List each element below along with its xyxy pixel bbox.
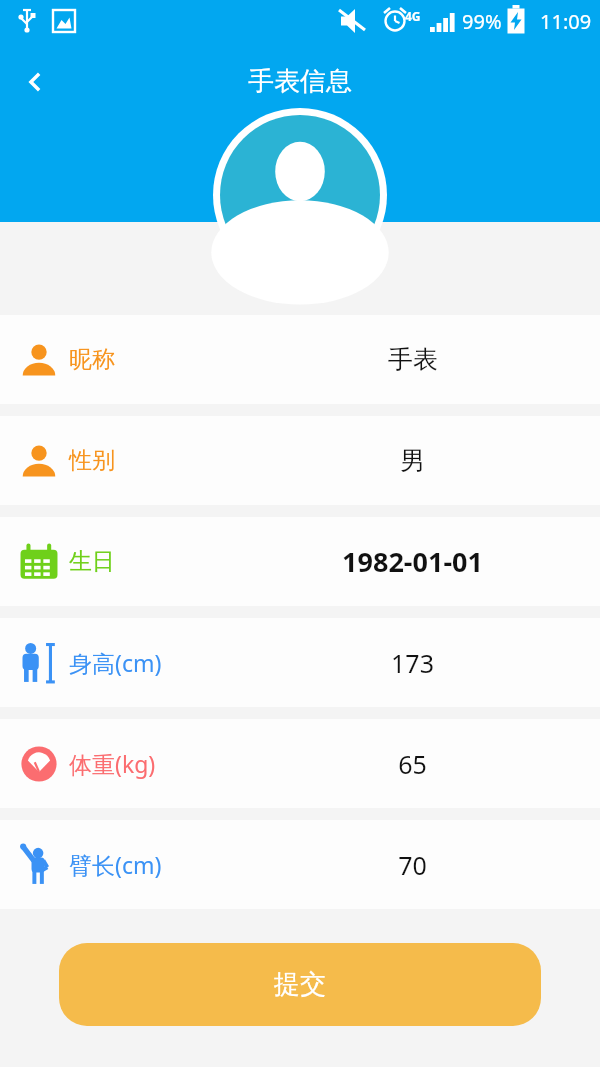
staticText: 提交 xyxy=(274,968,326,1001)
staticText: 70 xyxy=(398,848,427,882)
staticText: 173 xyxy=(391,646,434,680)
staticText: 11:09 xyxy=(540,8,592,35)
button[interactable]: 臂长(cm) xyxy=(0,820,600,909)
button[interactable]: 昵称 xyxy=(0,315,600,404)
staticText: 手表信息 xyxy=(248,65,352,98)
staticText: 99% xyxy=(462,8,502,35)
staticText: 性别 xyxy=(69,446,115,475)
button[interactable]: 身高(cm) xyxy=(0,618,600,707)
staticText: 4G xyxy=(405,8,421,24)
button[interactable]: Back xyxy=(7,54,63,110)
staticText: 昵称 xyxy=(69,345,115,374)
staticText: 1982-01-01 xyxy=(342,543,483,580)
button[interactable]: 性别 xyxy=(0,416,600,505)
staticText: 生日 xyxy=(69,547,115,576)
staticText: 臂长(cm) xyxy=(69,849,162,880)
button[interactable]: Avatar xyxy=(213,108,387,282)
button[interactable]: 提交 xyxy=(59,943,541,1026)
button[interactable]: 体重(kg) xyxy=(0,719,600,808)
staticText: 男 xyxy=(400,445,425,476)
staticText: 身高(cm) xyxy=(69,647,162,678)
staticText: 65 xyxy=(398,747,427,781)
staticText: 体重(kg) xyxy=(69,748,156,779)
staticText: 手表 xyxy=(388,344,438,375)
button[interactable]: 生日 xyxy=(0,517,600,606)
